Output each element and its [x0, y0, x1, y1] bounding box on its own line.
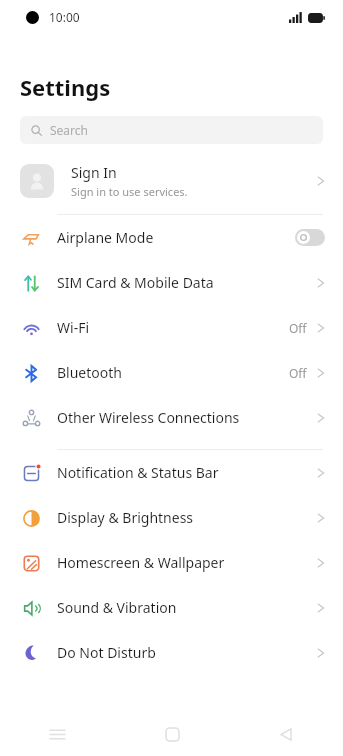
staticText: Sign in to use services. [71, 184, 188, 199]
button[interactable]: Wi-Fi [0, 305, 343, 350]
button[interactable]: Other Wireless Connections [0, 395, 343, 440]
button[interactable]: Airplane mode toggle [295, 229, 325, 246]
button[interactable]: SIM Card & Mobile Data [0, 260, 343, 305]
staticText: Sign In [71, 163, 117, 182]
staticText: Airplane Mode [57, 228, 295, 247]
staticText: Settings [20, 72, 111, 102]
staticText: Sound & Vibration [57, 598, 317, 617]
button[interactable]: Search [20, 116, 323, 144]
button[interactable]: Display & Brightness [0, 495, 343, 540]
staticText: SIM Card & Mobile Data [57, 273, 317, 292]
button[interactable]: Sign In [0, 157, 343, 205]
staticText: Bluetooth [57, 363, 289, 382]
staticText: Off [289, 365, 307, 381]
staticText: Do Not Disturb [57, 643, 317, 662]
button[interactable]: Recent apps [0, 712, 115, 756]
staticText: Wi-Fi [57, 318, 289, 337]
button[interactable]: Homescreen & Wallpaper [0, 540, 343, 585]
staticText: Display & Brightness [57, 508, 317, 527]
staticText: Other Wireless Connections [57, 408, 317, 427]
button[interactable]: Bluetooth [0, 350, 343, 395]
button[interactable]: Notification & Status Bar [0, 450, 343, 495]
button[interactable]: Do Not Disturb [0, 630, 343, 675]
staticText: 10:00 [49, 9, 80, 25]
staticText: Notification & Status Bar [57, 463, 317, 482]
button[interactable]: Home [115, 712, 229, 756]
button[interactable]: Sound & Vibration [0, 585, 343, 630]
staticText: Off [289, 320, 307, 336]
button[interactable]: Airplane Mode [0, 215, 343, 260]
staticText: Homescreen & Wallpaper [57, 553, 317, 572]
staticText: Search [50, 122, 88, 138]
